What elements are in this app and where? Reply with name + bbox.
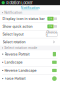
button[interactable]: Select rotation — [0, 38, 60, 46]
staticText: Rotation Locker — [6, 0, 33, 5]
staticText: Force Portrait — [4, 76, 25, 81]
staticText: ON — [48, 25, 52, 28]
staticText: Reverse Landscape — [4, 68, 36, 73]
staticText: Landscape — [4, 60, 22, 64]
staticText: Select layout — [2, 32, 23, 36]
staticText: Notification — [4, 11, 22, 15]
button[interactable]: Notification — [0, 5, 60, 10]
staticText: Select rotation — [2, 40, 25, 44]
button[interactable]: Display icon in status bar — [0, 15, 60, 22]
button[interactable]: Landscape — [0, 58, 60, 66]
button[interactable]: Force Portrait — [0, 75, 60, 82]
button[interactable]: Reverse Portrait — [0, 50, 60, 58]
staticText: Show quick action — [2, 24, 32, 29]
staticText: ON — [48, 17, 52, 20]
button[interactable]: Reverse Landscape — [0, 66, 60, 74]
button[interactable]: Select layout — [0, 30, 60, 38]
staticText: Display icon in status bar — [2, 17, 44, 21]
staticText: Select rotation mode — [4, 46, 37, 50]
button[interactable]: Show quick action — [0, 23, 60, 30]
staticText: Choice 1 — [46, 31, 57, 38]
staticText: Reverse Portrait — [4, 52, 29, 56]
staticText: Notification — [20, 5, 39, 10]
